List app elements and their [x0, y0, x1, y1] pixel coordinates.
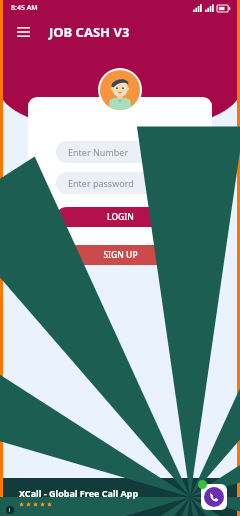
staticText: 8:45 AM [11, 3, 38, 13]
button[interactable]: XCall - Global Free Call App [3, 478, 237, 516]
staticText: Enter password [68, 177, 134, 189]
staticText: SIGN UP [103, 249, 138, 261]
button[interactable]: Enter password [56, 172, 184, 194]
button[interactable]: Enter Number [56, 141, 184, 163]
staticText: XCall - Global Free Call App [19, 487, 139, 499]
button[interactable]: Profile picture [100, 70, 140, 110]
button[interactable]: SIGN UP [56, 245, 184, 265]
staticText: i [9, 507, 11, 514]
staticText: Enter Number [68, 146, 129, 158]
button[interactable]: LOGIN [56, 207, 184, 227]
staticText: JOB CASH V3 [49, 23, 130, 41]
button[interactable]: Open navigation menu [11, 20, 35, 44]
staticText: LOGIN [107, 211, 134, 223]
